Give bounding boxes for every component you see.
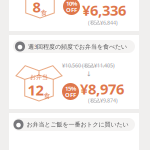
staticText: OFF: [66, 5, 77, 14]
staticText: 10%: [66, 0, 77, 7]
staticText: 食: [43, 91, 50, 100]
staticText: ↓: [86, 70, 92, 78]
button[interactable]: 週3回程度の頻度でお弁当を食べたい: [13, 40, 135, 53]
button[interactable]: お弁当とご飯を一番おトクに買いたい: [13, 118, 135, 131]
staticText: お弁当: [30, 73, 48, 81]
staticText: 食: [40, 8, 47, 17]
staticText: ¥10,560 (税込¥11,405): [62, 62, 115, 69]
staticText: 12: [27, 80, 43, 100]
staticText: 8: [32, 0, 40, 17]
button[interactable]: お弁当: [9, 57, 139, 109]
staticText: ¥6,336: [82, 0, 126, 20]
staticText: 週3回程度の頻度でお弁当を食べたい: [28, 42, 127, 51]
staticText: OFF: [65, 90, 76, 99]
staticText: 15%: [65, 84, 76, 92]
button[interactable]: お弁当: [9, 0, 139, 31]
staticText: (税込¥9,874): [88, 97, 118, 104]
staticText: ¥8,976: [80, 79, 124, 99]
staticText: (税込¥6,844): [88, 19, 118, 26]
staticText: お弁当とご飯を一番おトクに買いたい: [26, 121, 128, 128]
